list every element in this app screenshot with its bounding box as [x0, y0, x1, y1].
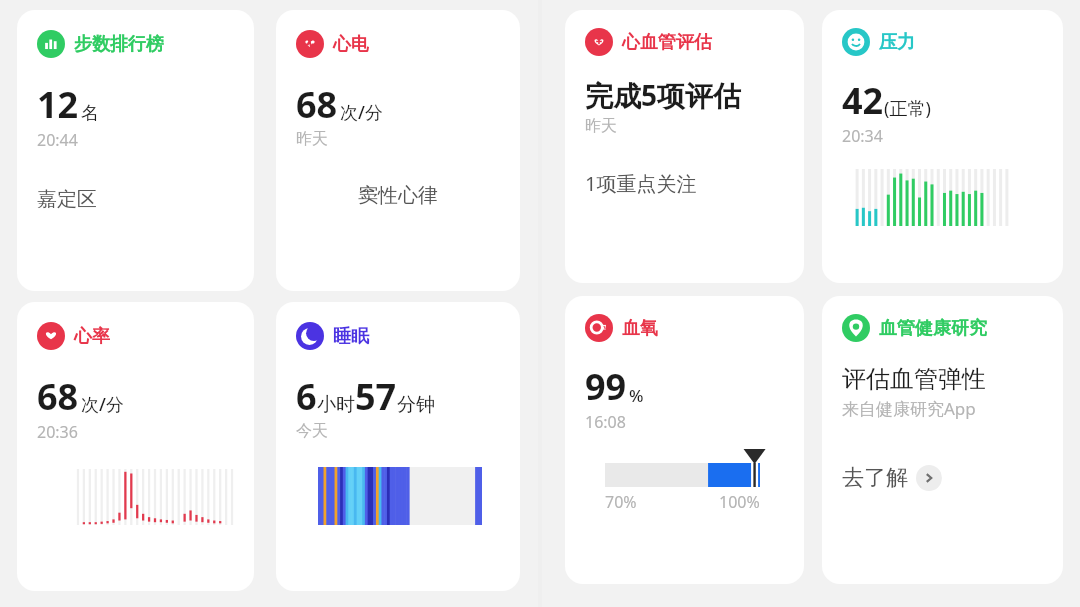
- staticText: 小时: [317, 393, 355, 417]
- staticText: 68: [296, 80, 338, 129]
- staticText: 今天: [296, 421, 328, 441]
- staticText: 来自健康研究App: [842, 397, 976, 420]
- staticText: 6: [296, 372, 317, 421]
- staticText: 昨天: [585, 116, 617, 136]
- staticText: 99: [585, 362, 627, 411]
- staticText: 评估血管弹性: [842, 364, 986, 394]
- staticText: %: [629, 384, 644, 407]
- button[interactable]: 步数排行榜: [17, 10, 254, 291]
- staticText: 窦性心律: [358, 183, 438, 208]
- other: 去了解: [916, 465, 942, 491]
- staticText: 去了解: [842, 464, 908, 492]
- button[interactable]: 睡眠: [276, 302, 520, 591]
- button[interactable]: 心率: [17, 302, 254, 591]
- staticText: 100%: [719, 491, 760, 513]
- staticText: (正常): [884, 96, 931, 121]
- staticText: 昨天: [296, 129, 328, 149]
- staticText: 名: [81, 102, 99, 125]
- staticText: 20:34: [842, 125, 883, 147]
- staticText: 57: [355, 372, 397, 421]
- staticText: 16:08: [585, 411, 626, 433]
- button[interactable]: 血管健康研究: [822, 296, 1063, 584]
- staticText: 压力: [879, 31, 915, 54]
- staticText: 12: [37, 80, 79, 129]
- button[interactable]: 心血管评估: [565, 10, 804, 283]
- button[interactable]: 心电: [276, 10, 520, 291]
- staticText: 20:44: [37, 129, 78, 151]
- staticText: 心率: [74, 325, 110, 348]
- button[interactable]: 压力: [822, 10, 1063, 283]
- staticText: 1项重点关注: [585, 170, 697, 197]
- staticText: 分钟: [397, 393, 435, 417]
- staticText: 20:36: [37, 421, 78, 443]
- staticText: 完成5项评估: [585, 76, 742, 114]
- staticText: 次/分: [340, 100, 383, 125]
- button[interactable]: 血氧: [565, 296, 804, 584]
- staticText: 睡眠: [333, 325, 369, 348]
- staticText: 嘉定区: [37, 187, 97, 212]
- staticText: 血管健康研究: [879, 317, 987, 340]
- button[interactable]: 去了解: [842, 460, 942, 496]
- staticText: 70%: [605, 491, 637, 513]
- staticText: 心电: [333, 33, 369, 56]
- staticText: 68: [37, 372, 79, 421]
- staticText: 步数排行榜: [74, 33, 164, 56]
- staticText: 心血管评估: [622, 31, 712, 54]
- staticText: 血氧: [622, 317, 658, 340]
- staticText: 次/分: [81, 392, 124, 417]
- staticText: 42: [842, 76, 884, 125]
